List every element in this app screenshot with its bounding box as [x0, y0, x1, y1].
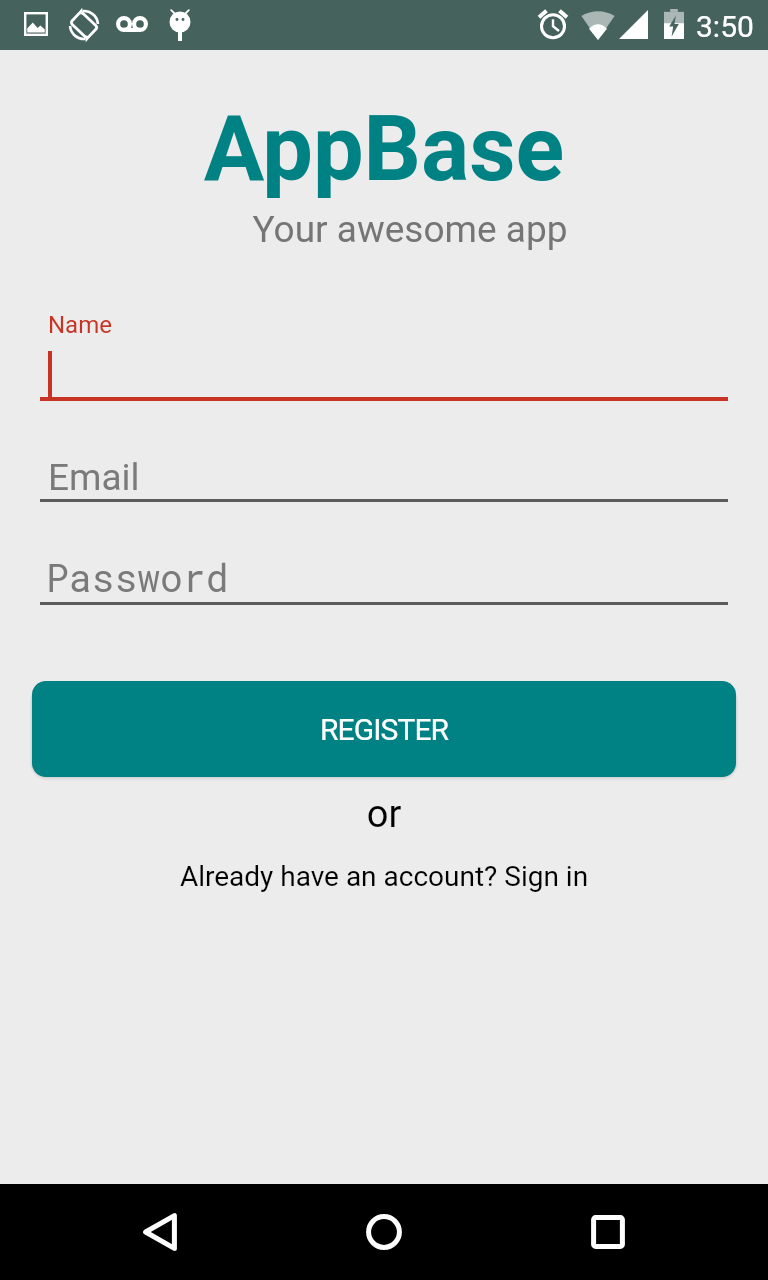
staticText: Email — [48, 456, 140, 499]
staticText: Name — [48, 311, 112, 339]
button[interactable]: REGISTER — [32, 681, 736, 777]
staticText: AppBase — [0, 97, 768, 202]
staticText: Already have an account? Sign in — [0, 860, 768, 893]
staticText: or — [0, 792, 768, 837]
staticText: Password — [46, 552, 229, 602]
staticText: Your awesome app — [26, 208, 768, 251]
button[interactable]: Already have an account? Sign in — [0, 860, 768, 900]
staticText: REGISTER — [320, 712, 449, 747]
button[interactable]: Back — [112, 1184, 208, 1280]
button[interactable]: Home — [336, 1184, 432, 1280]
staticText: 3:50 — [696, 9, 754, 44]
button[interactable]: Recent apps — [560, 1184, 656, 1280]
